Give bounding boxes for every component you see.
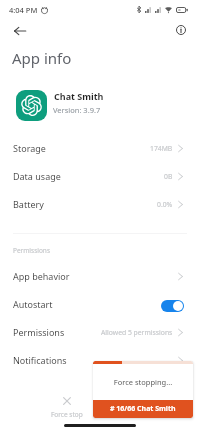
staticText: # 16/66 Chat Smith (110, 404, 176, 414)
staticText: Chat Smith (54, 90, 104, 102)
button[interactable]: Uninstall (100, 397, 167, 419)
staticText: Version: 3.9.7 (53, 105, 101, 115)
staticText: 174MB (150, 144, 173, 153)
button[interactable]: Battery (0, 190, 200, 218)
button[interactable]: Autostart (0, 290, 200, 318)
staticText: Allowed 5 permissions (101, 328, 173, 337)
staticText: Storage (13, 142, 46, 154)
staticText: Battery (13, 198, 44, 210)
button[interactable]: Notifications (0, 346, 200, 374)
button[interactable]: # 16/66 Chat Smith (93, 400, 193, 418)
button[interactable]: Storage (0, 134, 200, 162)
button[interactable]: Permissions (0, 318, 200, 346)
button[interactable]: App behavior (0, 262, 200, 290)
staticText: Force stopping... (93, 377, 193, 387)
button[interactable]: Force stop (33, 397, 100, 419)
staticText: App behavior (13, 270, 70, 282)
staticText: Permissions (13, 246, 51, 255)
button[interactable]: About app (170, 20, 192, 42)
button[interactable]: Back (9, 20, 31, 42)
staticText: Uninstall (120, 410, 147, 419)
staticText: 4:04 PM (9, 5, 38, 15)
button[interactable]: Data usage (0, 162, 200, 190)
staticText: Notifications (13, 354, 67, 366)
button[interactable]: Autostart toggle (161, 300, 184, 312)
staticText: Permissions (13, 326, 65, 338)
staticText: 0.0% (157, 200, 173, 209)
staticText: Force stop (51, 410, 83, 419)
staticText: Data usage (13, 170, 61, 182)
staticText: 0B (164, 172, 173, 181)
staticText: App info (12, 48, 72, 68)
staticText: Autostart (13, 298, 53, 310)
